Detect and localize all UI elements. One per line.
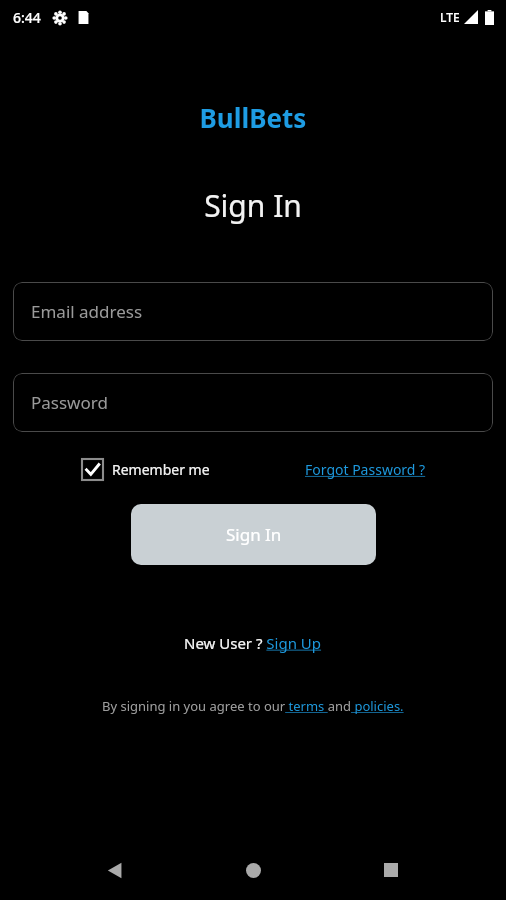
staticText: BullBets: [0, 100, 506, 135]
button[interactable]: Email address: [13, 282, 493, 341]
other: Remember me checkbox: [82, 459, 103, 480]
button[interactable]: Forgot Password ?: [305, 458, 426, 481]
staticText: New User ? Sign Up: [184, 633, 322, 653]
button[interactable]: Back: [92, 847, 138, 893]
staticText: LTE: [440, 9, 460, 25]
staticText: Password: [31, 391, 108, 414]
staticText: By signing in you agree to our terms and…: [102, 697, 404, 715]
button[interactable]: Password: [13, 373, 493, 432]
staticText: Remember me: [112, 460, 210, 479]
button[interactable]: By signing in you agree to our terms and…: [0, 697, 506, 715]
button[interactable]: Recents: [368, 847, 414, 893]
staticText: 6:44: [13, 8, 41, 27]
staticText: Sign In: [226, 523, 282, 546]
staticText: Email address: [31, 300, 143, 323]
button[interactable]: Remember me checkbox: [82, 457, 210, 482]
staticText: Forgot Password ?: [305, 460, 426, 479]
button[interactable]: Sign In: [131, 504, 376, 565]
button[interactable]: Home: [230, 847, 276, 893]
button[interactable]: New User ? Sign Up: [0, 633, 506, 653]
staticText: Sign In: [0, 185, 506, 226]
